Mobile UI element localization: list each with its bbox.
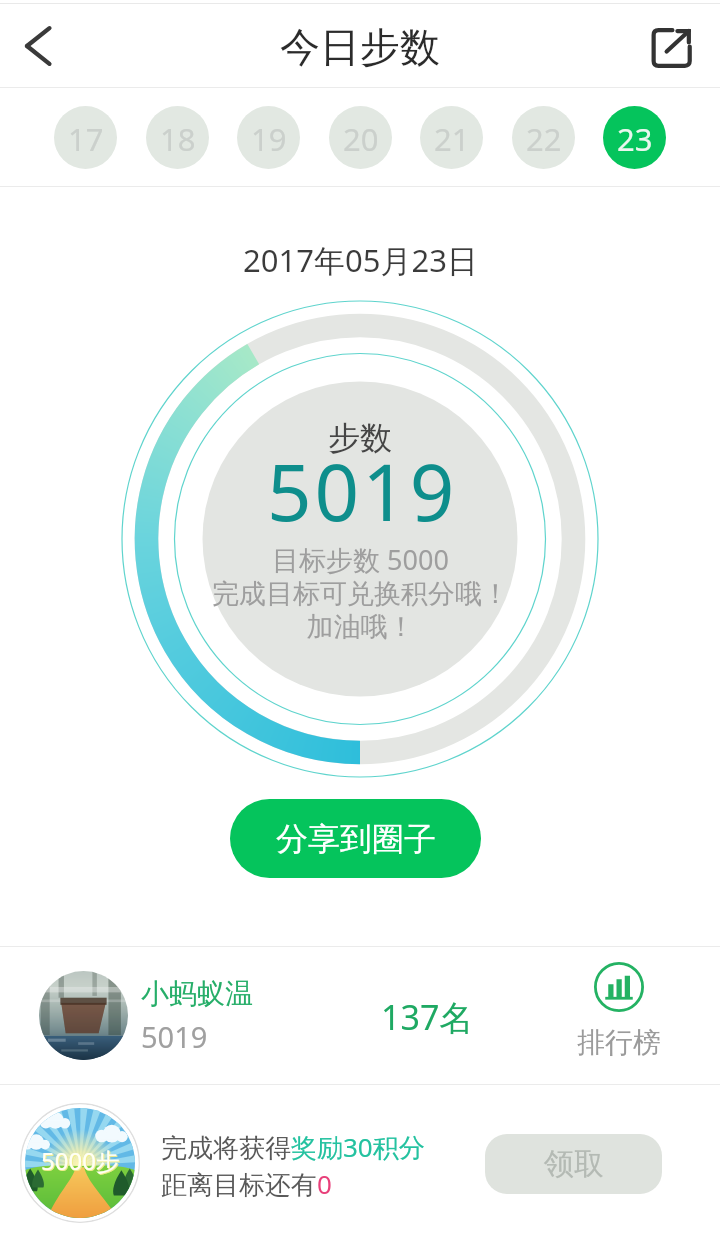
staticText: 完成将获得奖励30积分 (161, 1129, 425, 1165)
button[interactable]: 分享到圈子 (230, 799, 481, 878)
button[interactable]: 17 (54, 106, 117, 169)
staticText: 17 (68, 118, 104, 160)
staticText: 目标步数 5000 完成目标可兑换积分哦！ 加油哦！ (212, 541, 509, 644)
staticText: 距离目标还有0 (161, 1166, 332, 1202)
button[interactable]: 领取 (485, 1134, 662, 1194)
staticText: 5019 (267, 438, 458, 544)
staticText: 137名 (381, 994, 474, 1040)
staticText: 2017年05月23日 (243, 239, 478, 281)
staticText: 22 (526, 118, 562, 160)
staticText: 23 (617, 118, 653, 160)
button[interactable]: 20 (329, 106, 392, 169)
button[interactable]: 小蚂蚁温 (39, 971, 253, 1060)
button[interactable]: 22 (512, 106, 575, 169)
button[interactable]: 18 (146, 106, 209, 169)
button[interactable]: Share (626, 4, 720, 88)
staticText: 步数 (328, 418, 392, 458)
staticText: 21 (434, 118, 470, 160)
staticText: 排行榜 (577, 1025, 661, 1060)
staticText: 5000步 (42, 1145, 121, 1178)
button[interactable]: 21 (420, 106, 483, 169)
staticText: 18 (160, 118, 196, 160)
staticText: 5019 (141, 1017, 208, 1056)
button[interactable]: Back (0, 4, 76, 88)
button[interactable]: 137名 (381, 994, 474, 1040)
staticText: 19 (251, 118, 287, 160)
staticText: 今日步数 (280, 22, 440, 72)
button[interactable]: 23 (603, 106, 666, 169)
staticText: 5000步 (41, 1144, 120, 1177)
button[interactable]: 19 (237, 106, 300, 169)
button[interactable]: 排行榜 (576, 962, 661, 1060)
staticText: 领取 (544, 1145, 604, 1183)
staticText: 20 (343, 118, 379, 160)
staticText: 小蚂蚁温 (141, 976, 253, 1011)
staticText: 分享到圈子 (276, 819, 436, 859)
